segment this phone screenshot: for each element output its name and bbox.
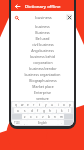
button[interactable]: z	[22, 114, 28, 119]
button[interactable]: j	[53, 108, 59, 113]
button[interactable]: m	[58, 114, 64, 119]
staticText: civil business	[32, 42, 54, 47]
staticText: Enterprise	[34, 90, 51, 95]
button[interactable]: Period	[58, 120, 64, 125]
button[interactable]: x	[28, 114, 34, 119]
staticText: Bel used	[35, 36, 50, 41]
staticText: n	[54, 115, 56, 119]
staticText: t	[39, 103, 41, 107]
staticText: ?123	[14, 121, 20, 125]
button[interactable]: h	[47, 108, 53, 113]
staticText: v	[42, 115, 44, 119]
staticText: venture	[36, 96, 49, 101]
staticText: English	[38, 121, 47, 125]
staticText: l	[68, 109, 69, 113]
staticText: a	[17, 109, 19, 113]
staticText: business/vendor	[29, 66, 57, 71]
button[interactable]: r	[31, 102, 37, 107]
button[interactable]: b	[46, 114, 52, 119]
button[interactable]: business	[11, 23, 74, 29]
staticText: g	[43, 109, 45, 113]
staticText: .	[61, 121, 62, 125]
button[interactable]: business behid	[11, 53, 74, 59]
staticText: e	[27, 103, 29, 107]
button[interactable]: Back	[13, 2, 21, 10]
button[interactable]: Symbols	[12, 120, 21, 125]
staticText: o	[63, 103, 65, 107]
button[interactable]: i	[55, 102, 61, 107]
staticText: d	[31, 109, 33, 113]
staticText: Angcbusiness	[31, 48, 54, 53]
button[interactable]: Enterprise	[11, 89, 74, 95]
staticText: business	[35, 24, 50, 29]
button[interactable]: d	[28, 108, 35, 113]
button[interactable]: venture	[11, 95, 74, 101]
button[interactable]: t	[37, 102, 43, 107]
staticText: c	[36, 115, 38, 119]
button[interactable]: k	[59, 108, 65, 113]
button[interactable]: Space	[27, 120, 58, 125]
staticText: Business	[35, 30, 50, 35]
button[interactable]: e	[25, 102, 31, 107]
button[interactable]: business/vendor	[11, 65, 74, 71]
staticText: s	[24, 109, 26, 113]
staticText: z	[24, 115, 26, 119]
button[interactable]: y	[43, 102, 49, 107]
button[interactable]: Clear	[66, 14, 72, 20]
button[interactable]: a	[14, 108, 21, 113]
staticText: corporation	[33, 60, 53, 65]
button[interactable]: s	[21, 108, 28, 113]
staticText: i	[58, 103, 59, 107]
staticText: y	[45, 103, 47, 107]
button[interactable]: Market place	[11, 83, 74, 89]
button[interactable]: Bel used	[11, 35, 74, 41]
staticText: Biographusiness	[29, 78, 57, 83]
button[interactable]: Angcbusiness	[11, 47, 74, 53]
button[interactable]: o	[61, 102, 67, 107]
staticText: m	[60, 115, 63, 119]
button[interactable]: corporation	[11, 59, 74, 65]
staticText: business behid	[30, 54, 55, 59]
staticText: Market place	[32, 84, 54, 89]
staticText: r	[33, 103, 35, 107]
staticText: x	[30, 115, 32, 119]
button[interactable]: g	[41, 108, 47, 113]
staticText: business	[35, 15, 52, 20]
staticText: business organization	[24, 72, 61, 77]
button[interactable]: v	[40, 114, 46, 119]
staticText: j	[56, 109, 57, 113]
staticText: h	[49, 109, 51, 113]
button[interactable]: business organization	[11, 71, 74, 77]
button[interactable]: n	[52, 114, 58, 119]
staticText: b	[48, 115, 50, 119]
button[interactable]: Search	[13, 11, 72, 23]
staticText: q	[15, 103, 17, 107]
button[interactable]: civil business	[11, 41, 74, 47]
staticText: Dictionary offline	[25, 3, 61, 9]
staticText: p	[69, 103, 71, 107]
button[interactable]: l	[65, 108, 71, 113]
button[interactable]: c	[34, 114, 40, 119]
button[interactable]: u	[49, 102, 55, 107]
button[interactable]: w	[19, 102, 25, 107]
button[interactable]: Biographusiness	[11, 77, 74, 83]
button[interactable]: Business	[11, 29, 74, 35]
staticText: u	[51, 103, 53, 107]
staticText: f	[37, 109, 39, 113]
staticText: ,	[24, 121, 25, 125]
button[interactable]: Comma	[21, 120, 27, 125]
button[interactable]: f	[35, 108, 41, 113]
staticText: k	[61, 109, 63, 113]
button[interactable]: q	[12, 102, 19, 107]
button[interactable]: Enter	[64, 120, 73, 125]
other: Search	[13, 14, 20, 21]
staticText: w	[21, 103, 24, 107]
button[interactable]: p	[67, 102, 73, 107]
